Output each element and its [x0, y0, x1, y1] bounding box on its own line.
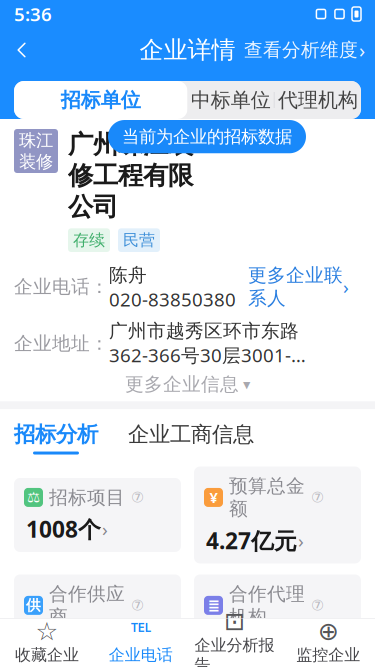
staticText: ⑦ [311, 597, 324, 614]
staticText: ⑦ [311, 489, 324, 506]
staticText: ℡ [131, 614, 151, 648]
staticText: 企业分析报告 [194, 635, 274, 667]
staticText: ⊕ [318, 617, 339, 646]
staticText: ▾ [243, 376, 250, 393]
staticText: ⑦ [131, 489, 144, 506]
staticText: 供 [26, 596, 41, 614]
button[interactable]: ⊡ [187, 618, 281, 667]
button[interactable]: ⊕ [281, 618, 375, 667]
staticText: 企业详情 [139, 35, 235, 65]
button[interactable]: 企业工商信息 [128, 421, 254, 454]
button[interactable]: ℡ [94, 618, 188, 667]
staticText: ≣ [207, 597, 219, 614]
button[interactable]: ≣ [194, 574, 361, 667]
button[interactable]: 查看分析维度 [234, 28, 375, 72]
staticText: 合作供应商 [49, 582, 125, 628]
staticText: ¥ [209, 488, 217, 507]
button[interactable]: ¥ [194, 466, 361, 563]
staticText: › [359, 37, 365, 63]
staticText: 中标单位 [191, 88, 271, 112]
staticText: › [102, 517, 108, 541]
staticText: 3家 [206, 633, 242, 663]
staticText: ☆ [35, 617, 58, 646]
staticText: 合作代理机构 [229, 582, 305, 628]
staticText: 民营 [123, 230, 155, 250]
button[interactable]: 招标分析 [14, 421, 98, 454]
staticText: 企业电话： [14, 275, 109, 298]
button[interactable]: ☆ [0, 618, 94, 667]
button[interactable]: 招标单位 [14, 81, 187, 119]
staticText: ⊡ [224, 607, 245, 636]
button[interactable]: 更多企业联系人 [236, 264, 349, 310]
staticText: 珠江 装修 [19, 130, 53, 172]
button[interactable]: 中标单位 [187, 81, 274, 119]
staticText: 更多企业联系人 [248, 264, 343, 310]
staticText: ⚖ [27, 489, 40, 506]
staticText: 预算总金额 [229, 474, 305, 520]
staticText: 4.27亿元 [206, 525, 297, 555]
staticText: ⑦ [131, 597, 144, 614]
button[interactable]: 供 [14, 574, 181, 667]
staticText: 招标项目 [49, 486, 125, 509]
staticText: 查看分析维度 [244, 38, 358, 61]
staticText: 更多企业信息 [125, 373, 239, 396]
staticText: 企业工商信息 [128, 421, 254, 447]
staticText: 广州市越秀区环市东路362-366号30层3001-… [109, 320, 306, 367]
staticText: 收藏企业 [15, 645, 79, 665]
button[interactable]: ⚖ [14, 478, 181, 552]
staticText: 监控企业 [296, 645, 360, 665]
staticText: 招标单位 [61, 88, 141, 112]
staticText: 企业地址： [14, 332, 109, 355]
staticText: › [243, 636, 249, 661]
staticText: › [298, 528, 304, 553]
staticText: 5:36 [14, 2, 52, 26]
button[interactable]: 代理机构 [275, 81, 361, 119]
button[interactable]: 返回 [0, 28, 44, 72]
staticText: 当前为企业的招标数据 [122, 126, 292, 147]
staticText: 存续 [73, 230, 105, 250]
staticText: 企业电话 [109, 645, 173, 665]
staticText: › [343, 274, 349, 299]
staticText: 广州珠江装修工程有限公司 [68, 129, 193, 222]
staticText: 代理机构 [278, 88, 358, 112]
staticText: 373家 [26, 633, 88, 663]
staticText: 招标分析 [14, 421, 98, 447]
button[interactable]: 更多企业信息 [0, 367, 375, 401]
staticText: 陈舟 020-83850380 [109, 262, 236, 312]
staticText: 1008个 [26, 514, 101, 544]
